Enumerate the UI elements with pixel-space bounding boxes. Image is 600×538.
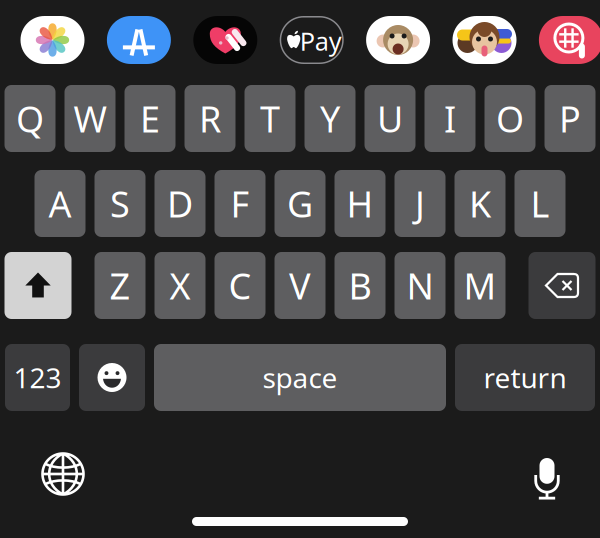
- staticText: N: [406, 262, 433, 309]
- button[interactable]: return: [455, 344, 595, 411]
- button[interactable]: space: [154, 344, 446, 411]
- button[interactable]: C: [214, 252, 265, 319]
- button[interactable]: Emoji: [79, 344, 145, 411]
- button[interactable]: G: [274, 170, 325, 237]
- staticText: L: [530, 180, 549, 227]
- button[interactable]: U: [364, 85, 415, 152]
- staticText: C: [228, 262, 251, 309]
- staticText: H: [346, 180, 373, 227]
- button[interactable]: D: [154, 170, 205, 237]
- button[interactable]: 123: [5, 344, 70, 411]
- button[interactable]: M: [454, 252, 505, 319]
- button[interactable]: F: [214, 170, 265, 237]
- staticText: W: [73, 95, 106, 142]
- staticText: M: [463, 262, 496, 309]
- staticText: space: [262, 359, 337, 396]
- button[interactable]: Z: [94, 252, 145, 319]
- staticText: X: [169, 262, 190, 309]
- staticText: R: [199, 95, 221, 142]
- staticText: Pay: [300, 24, 342, 58]
- button[interactable]: V: [274, 252, 325, 319]
- staticText: Y: [320, 95, 340, 142]
- button[interactable]: Dictation: [519, 447, 575, 501]
- button[interactable]: S: [94, 170, 145, 237]
- staticText: P: [559, 95, 581, 142]
- button[interactable]: Shift: [4, 252, 71, 319]
- button[interactable]: Memoji Stickers: [452, 16, 516, 64]
- button[interactable]: Q: [4, 85, 55, 152]
- button[interactable]: B: [334, 252, 385, 319]
- staticText: J: [415, 180, 425, 227]
- button[interactable]: Memoji: [366, 16, 430, 64]
- button[interactable]: L: [514, 170, 565, 237]
- staticText: K: [469, 180, 491, 227]
- staticText: D: [167, 180, 193, 227]
- button[interactable]: J: [394, 170, 445, 237]
- staticText: A: [48, 180, 71, 227]
- button[interactable]: Images: [539, 16, 600, 64]
- button[interactable]: W: [64, 85, 115, 152]
- staticText: 123: [13, 359, 61, 396]
- button[interactable]: Health: [193, 16, 257, 64]
- button[interactable]: T: [244, 85, 295, 152]
- staticText: Z: [109, 262, 130, 309]
- button[interactable]: A: [34, 170, 85, 237]
- button[interactable]: Y: [304, 85, 355, 152]
- staticText: T: [260, 95, 280, 142]
- button[interactable]: K: [454, 170, 505, 237]
- button[interactable]: R: [184, 85, 235, 152]
- staticText: E: [140, 95, 160, 142]
- button[interactable]: X: [154, 252, 205, 319]
- staticText: B: [348, 262, 371, 309]
- staticText: G: [287, 180, 313, 227]
- staticText: Q: [16, 95, 44, 142]
- button[interactable]: N: [394, 252, 445, 319]
- button[interactable]: I: [424, 85, 475, 152]
- button[interactable]: P: [544, 85, 595, 152]
- button[interactable]: H: [334, 170, 385, 237]
- staticText: O: [496, 95, 524, 142]
- button[interactable]: Delete: [528, 252, 595, 319]
- button[interactable]: Apple Pay: [280, 16, 344, 64]
- button[interactable]: Next keyboard: [35, 447, 91, 501]
- button[interactable]: E: [124, 85, 175, 152]
- button[interactable]: O: [484, 85, 535, 152]
- staticText: U: [377, 95, 403, 142]
- button[interactable]: Photos: [20, 16, 84, 64]
- staticText: return: [483, 359, 566, 396]
- staticText: I: [444, 95, 456, 142]
- staticText: S: [110, 180, 130, 227]
- staticText: V: [289, 262, 311, 309]
- button[interactable]: App Store: [107, 16, 171, 64]
- staticText: F: [230, 180, 249, 227]
